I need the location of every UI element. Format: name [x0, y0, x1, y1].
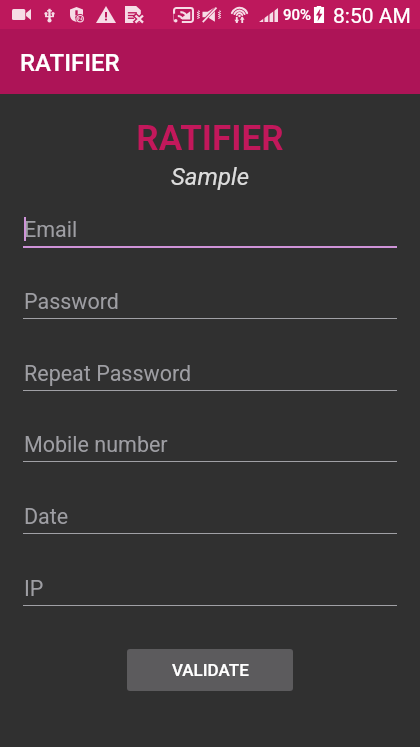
staticText: Mobile number	[24, 432, 168, 457]
staticText: IP	[24, 576, 44, 601]
staticText: Sample	[0, 163, 420, 191]
staticText: RATIFIER	[20, 49, 120, 77]
staticText: VALIDATE	[172, 660, 249, 680]
button[interactable]: Mobile number	[0, 432, 420, 472]
button[interactable]: VALIDATE	[127, 649, 293, 691]
staticText: Date	[24, 504, 69, 529]
staticText: Repeat Password	[24, 361, 192, 386]
staticText: Password	[24, 289, 119, 314]
button[interactable]: Email	[0, 217, 420, 257]
button[interactable]: Date	[0, 504, 420, 544]
button[interactable]: IP	[0, 576, 420, 616]
button[interactable]: Password	[0, 289, 420, 329]
staticText: 90%	[283, 6, 312, 24]
staticText: 8:50 AM	[333, 4, 411, 29]
button[interactable]: Repeat Password	[0, 361, 420, 401]
staticText: RATIFIER	[0, 118, 420, 159]
staticText: Email	[24, 217, 78, 242]
